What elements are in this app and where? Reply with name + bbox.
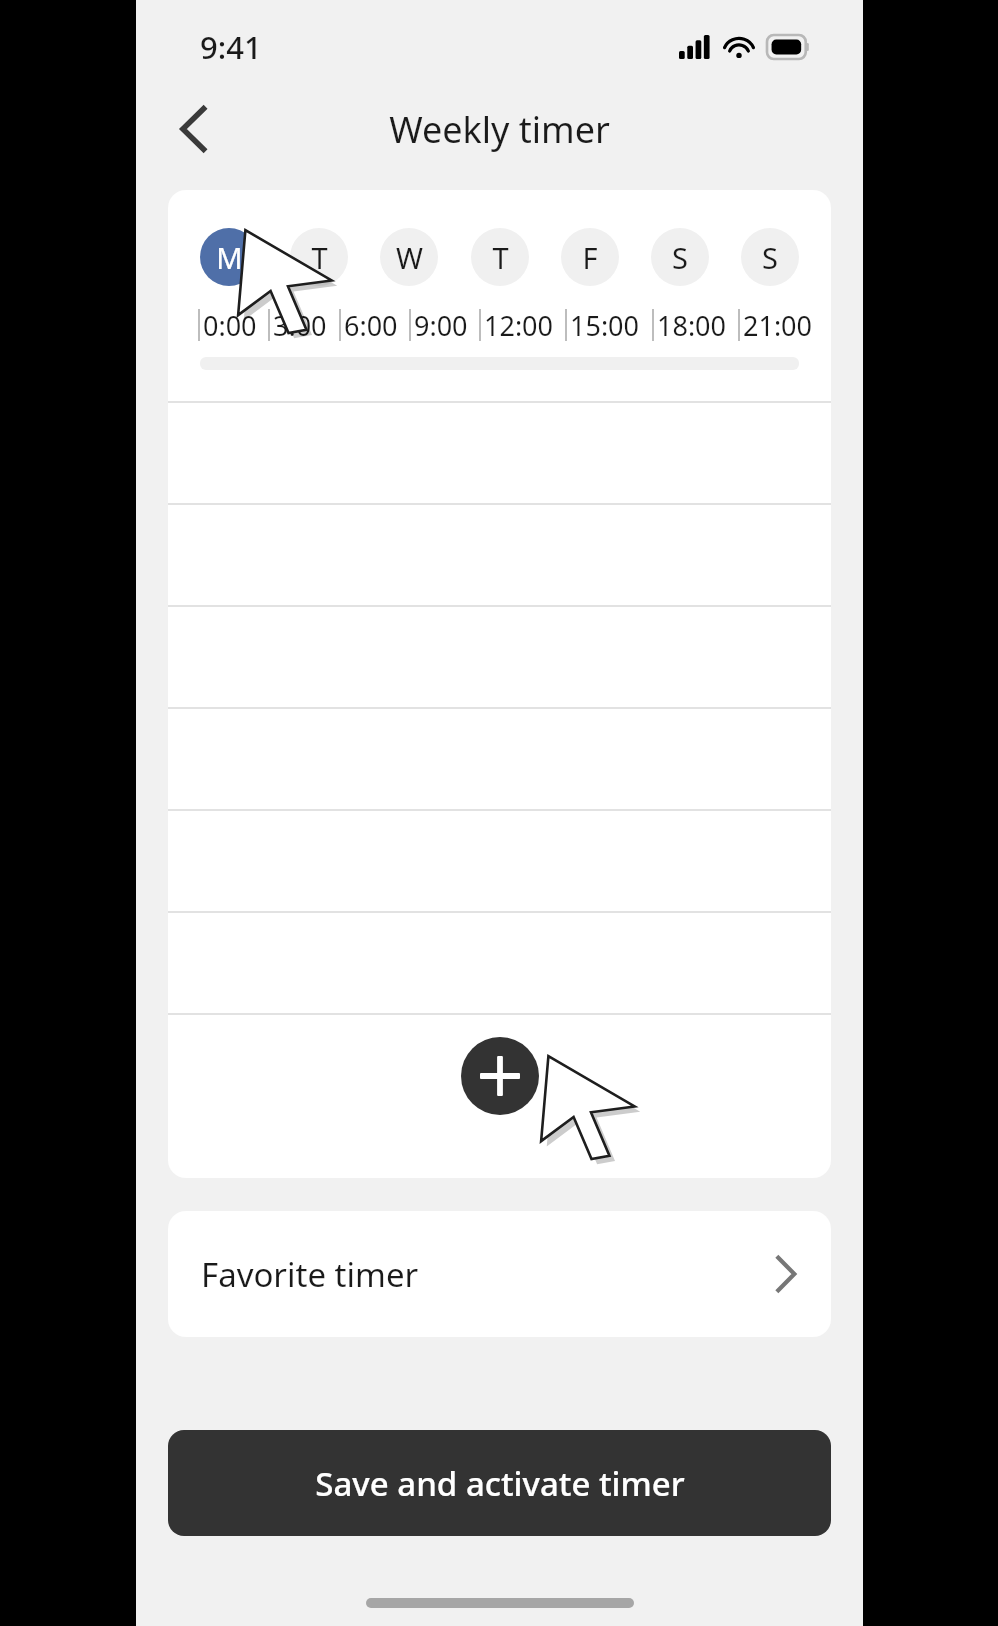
staticText: F bbox=[582, 238, 598, 277]
staticText: 3:00 bbox=[273, 307, 327, 343]
staticText: T bbox=[492, 238, 509, 277]
button[interactable]: Back bbox=[164, 99, 224, 159]
staticText: Weekly timer bbox=[389, 105, 610, 154]
staticText: W bbox=[396, 238, 423, 277]
button[interactable]: M bbox=[200, 228, 258, 286]
staticText: 18:00 bbox=[657, 307, 727, 343]
button[interactable]: F bbox=[561, 228, 619, 286]
staticText: 9:41 bbox=[200, 26, 262, 68]
staticText: S bbox=[762, 238, 778, 277]
button[interactable]: T bbox=[290, 228, 348, 286]
staticText: 12:00 bbox=[484, 307, 554, 343]
button[interactable]: S bbox=[741, 228, 799, 286]
staticText: 6:00 bbox=[344, 307, 398, 343]
staticText: Save and activate timer bbox=[315, 1461, 685, 1506]
button[interactable]: W bbox=[380, 228, 438, 286]
button[interactable]: S bbox=[651, 228, 709, 286]
staticText: T bbox=[311, 238, 328, 277]
button[interactable]: Add timer bbox=[461, 1037, 539, 1115]
staticText: S bbox=[672, 238, 688, 277]
staticText: 9:00 bbox=[414, 307, 468, 343]
button[interactable]: Favorite timer bbox=[168, 1211, 831, 1337]
staticText: Favorite timer bbox=[201, 1252, 419, 1297]
staticText: 21:00 bbox=[743, 307, 813, 343]
button[interactable]: Save and activate timer bbox=[168, 1430, 831, 1536]
button[interactable]: T bbox=[471, 228, 529, 286]
staticText: M bbox=[216, 238, 243, 277]
staticText: 15:00 bbox=[570, 307, 640, 343]
staticText: 0:00 bbox=[203, 307, 257, 343]
